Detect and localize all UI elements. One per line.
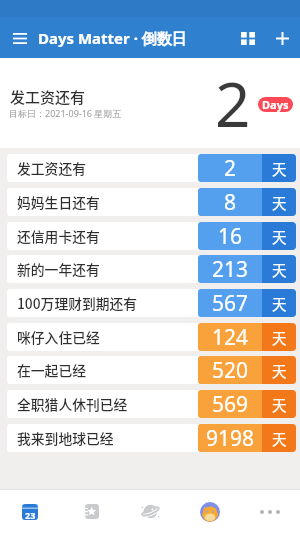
button[interactable]: Profile: [180, 490, 240, 533]
staticText: 咪仔入住已经: [17, 327, 198, 347]
staticText: 2: [215, 61, 251, 145]
staticText: 天: [272, 259, 287, 280]
staticText: 全职猎人休刊已经: [17, 394, 198, 414]
button[interactable]: Menu: [3, 21, 37, 55]
staticText: 天: [272, 226, 287, 247]
staticText: 发工资还有: [17, 158, 198, 178]
staticText: 100万理财到期还有: [17, 293, 198, 313]
staticText: 天: [272, 158, 287, 179]
staticText: 发工资还有: [10, 86, 86, 108]
button[interactable]: 新的一年还有: [7, 255, 296, 283]
button[interactable]: Explore: [120, 490, 180, 533]
staticText: 妈妈生日还有: [17, 192, 198, 212]
staticText: 天: [272, 192, 287, 213]
staticText: Days Matter · 倒数日: [38, 28, 187, 48]
button[interactable]: Favorites: [60, 490, 120, 533]
staticText: Days: [262, 97, 289, 112]
staticText: 520: [212, 356, 249, 384]
staticText: 天: [272, 394, 287, 415]
staticText: 124: [212, 323, 249, 351]
button[interactable]: Calendar: [0, 490, 60, 533]
staticText: 23: [25, 509, 36, 521]
button[interactable]: Grid view: [233, 23, 263, 53]
button[interactable]: 还信用卡还有: [7, 222, 296, 250]
staticText: 9198: [206, 424, 255, 452]
button[interactable]: 100万理财到期还有: [7, 289, 296, 317]
staticText: 天: [272, 293, 287, 314]
staticText: 新的一年还有: [17, 259, 198, 279]
button[interactable]: Days: [258, 97, 293, 112]
button[interactable]: 全职猎人休刊已经: [7, 390, 296, 418]
staticText: 8: [224, 188, 237, 216]
button[interactable]: 妈妈生日还有: [7, 188, 296, 216]
button[interactable]: 在一起已经: [7, 356, 296, 384]
staticText: 16: [218, 222, 243, 250]
button[interactable]: 咪仔入住已经: [7, 323, 296, 351]
staticText: 213: [212, 255, 249, 283]
staticText: 天: [272, 360, 287, 381]
staticText: 天: [272, 327, 287, 348]
staticText: 天: [272, 428, 287, 449]
staticText: 还信用卡还有: [17, 226, 198, 246]
button[interactable]: More: [240, 490, 300, 533]
staticText: 569: [212, 390, 249, 418]
button[interactable]: 我来到地球已经: [7, 424, 296, 452]
staticText: 我来到地球已经: [17, 428, 198, 448]
staticText: 567: [212, 289, 249, 317]
staticText: 2: [224, 154, 237, 182]
button[interactable]: 发工资还有: [7, 154, 296, 182]
staticText: 目标日：2021-09-16 星期五: [9, 107, 122, 119]
staticText: 在一起已经: [17, 360, 198, 380]
button[interactable]: Add: [267, 23, 297, 53]
